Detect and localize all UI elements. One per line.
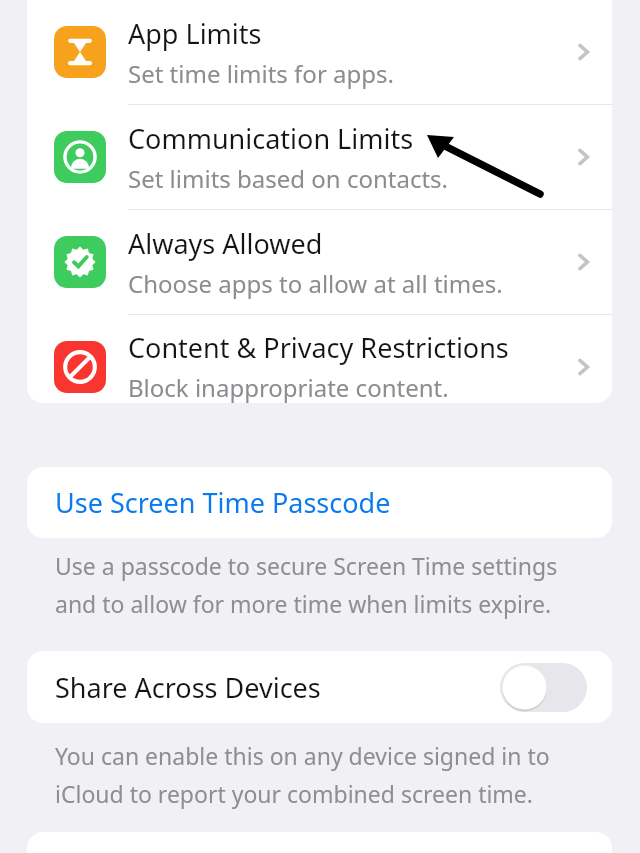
staticText: Share Across Devices bbox=[55, 669, 321, 706]
button[interactable]: Always Allowed bbox=[27, 210, 612, 315]
staticText: Block inappropriate content. bbox=[128, 371, 449, 403]
staticText: Set time limits for apps. bbox=[128, 57, 394, 90]
button[interactable]: Use Screen Time Passcode bbox=[27, 467, 612, 538]
button[interactable]: Communication Limits bbox=[27, 105, 612, 210]
staticText: Choose apps to allow at all times. bbox=[128, 267, 503, 300]
staticText: Set limits based on contacts. bbox=[128, 162, 448, 195]
button[interactable]: Share Across Devices bbox=[27, 651, 612, 723]
staticText: Use a passcode to secure Screen Time set… bbox=[55, 550, 558, 581]
button[interactable]: App Limits bbox=[27, 0, 612, 105]
staticText: You can enable this on any device signed… bbox=[55, 740, 550, 771]
staticText: App Limits bbox=[128, 15, 262, 52]
staticText: Communication Limits bbox=[128, 120, 414, 157]
button[interactable]: Share Across Devices bbox=[500, 663, 587, 712]
staticText: Content & Privacy Restrictions bbox=[128, 329, 509, 366]
staticText: Use Screen Time Passcode bbox=[55, 484, 391, 521]
staticText: iCloud to report your combined screen ti… bbox=[55, 778, 534, 809]
staticText: Always Allowed bbox=[128, 225, 323, 262]
staticText: and to allow for more time when limits e… bbox=[55, 588, 552, 619]
button[interactable]: Content & Privacy Restrictions bbox=[27, 315, 612, 403]
